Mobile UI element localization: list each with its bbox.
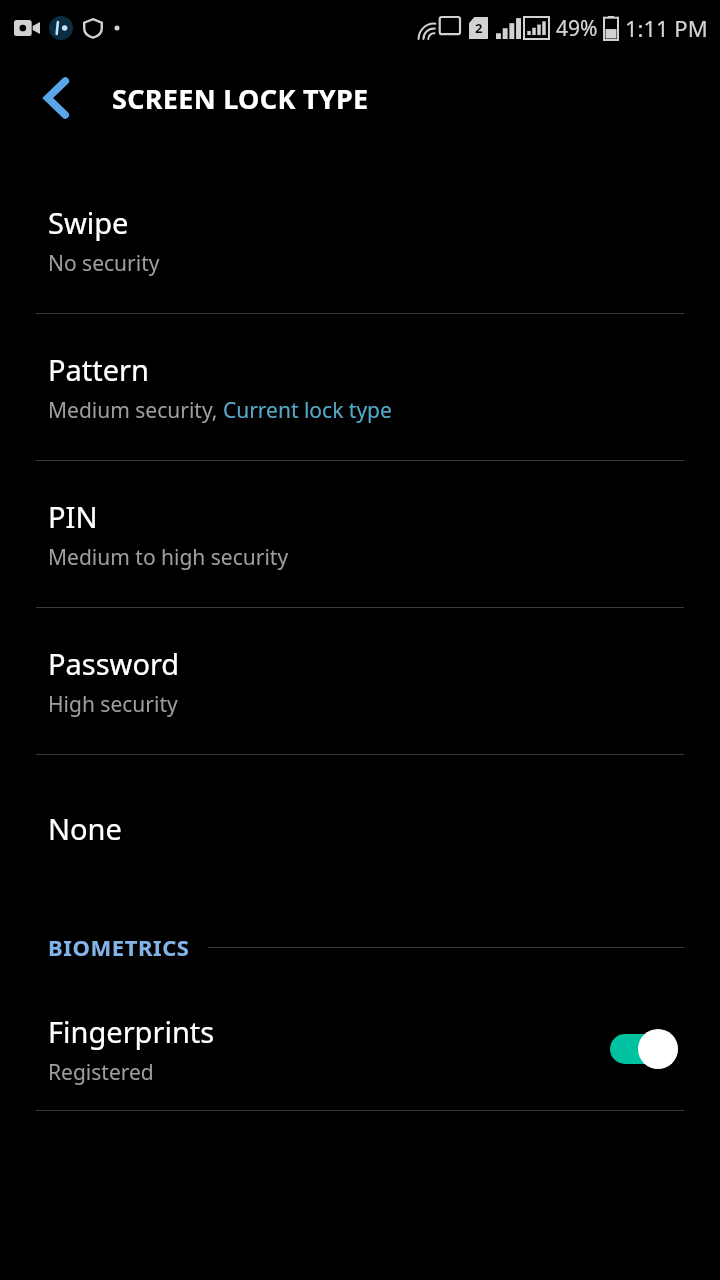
button[interactable]: Swipe — [0, 167, 720, 313]
staticText: Password — [48, 644, 180, 683]
staticText: High security — [48, 690, 178, 719]
button[interactable]: Fingerprints — [0, 988, 720, 1110]
button[interactable]: PIN — [0, 461, 720, 607]
button[interactable]: Password — [0, 608, 720, 754]
staticText: Pattern — [48, 350, 150, 389]
staticText: Medium security, Current lock type — [48, 396, 392, 425]
button[interactable]: Navigate up — [26, 67, 88, 129]
staticText: PIN — [48, 497, 98, 536]
staticText: Swipe — [48, 203, 129, 242]
staticText: None — [48, 809, 122, 848]
staticText: Fingerprints — [48, 1012, 215, 1051]
staticText: 49% — [556, 14, 598, 43]
staticText: Medium to high security — [48, 543, 289, 572]
staticText: 1:11 PM — [625, 13, 708, 43]
staticText: 2 — [475, 19, 483, 37]
button[interactable]: Pattern — [0, 314, 720, 460]
button[interactable]: None — [0, 755, 720, 901]
staticText: SCREEN LOCK TYPE — [112, 80, 369, 117]
staticText: No security — [48, 249, 160, 278]
staticText: BIOMETRICS — [48, 932, 190, 962]
staticText: Registered — [48, 1058, 154, 1087]
button[interactable]: Fingerprints toggle, on — [608, 1027, 684, 1071]
